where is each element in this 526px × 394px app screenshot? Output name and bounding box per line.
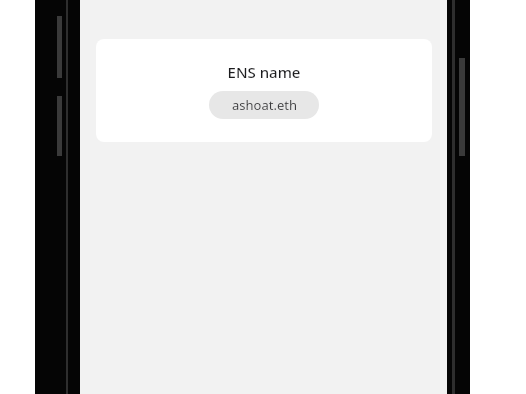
staticText: ashoat.eth (232, 96, 297, 114)
button[interactable]: ENS name (96, 39, 432, 142)
button[interactable]: ashoat.eth (209, 91, 319, 119)
staticText: ENS name (96, 62, 432, 82)
